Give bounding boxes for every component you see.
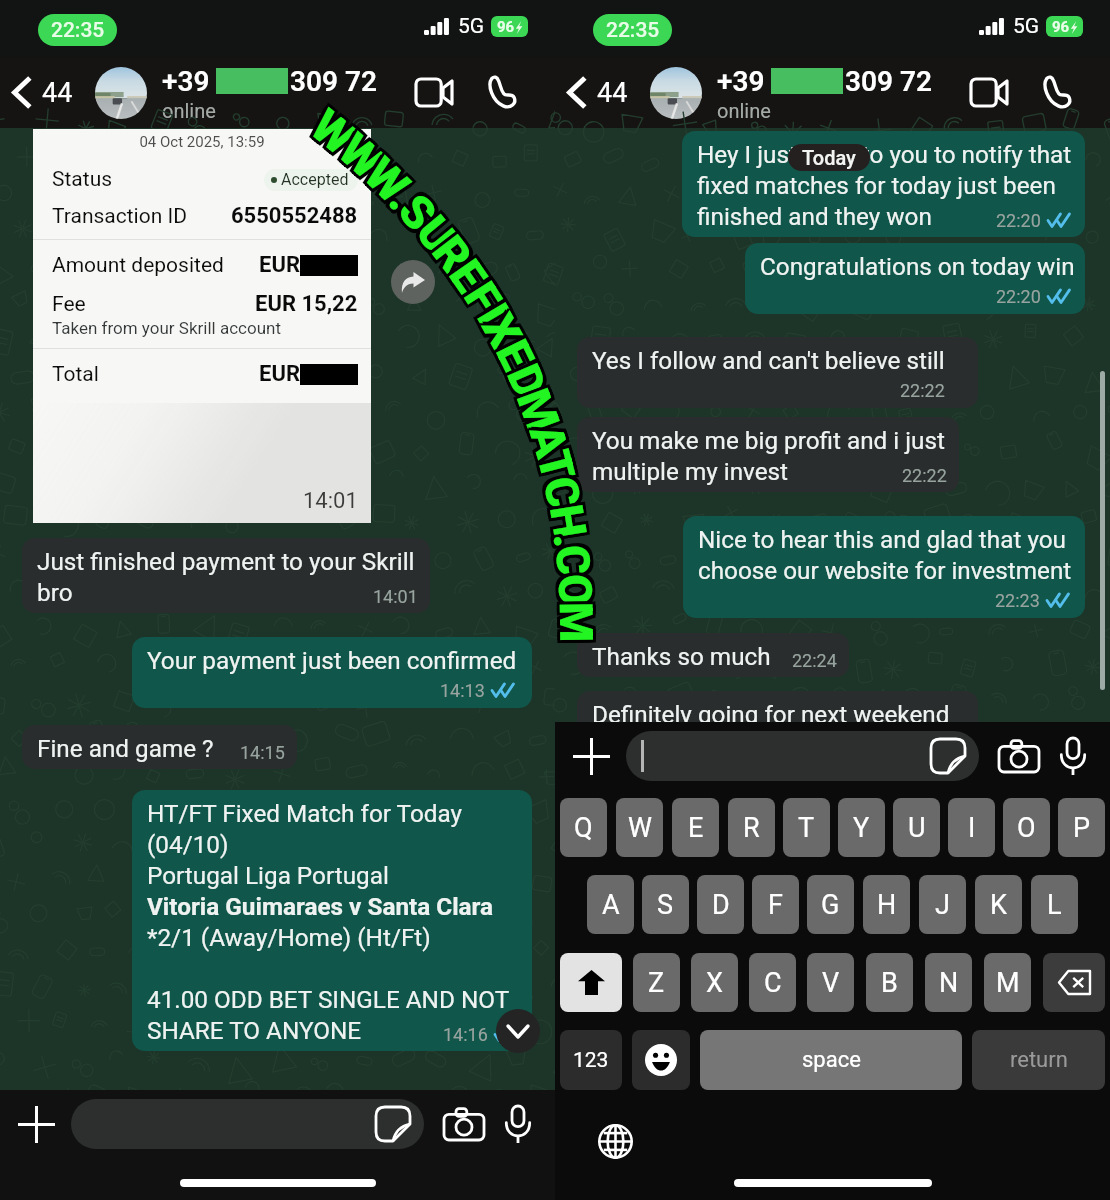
staticText: A — [518, 415, 579, 461]
button[interactable]: Camera — [997, 734, 1041, 778]
staticText: S — [385, 185, 445, 243]
button[interactable]: R — [728, 798, 775, 857]
staticText: F — [455, 275, 514, 326]
button[interactable]: Backspace — [1043, 953, 1105, 1012]
button[interactable]: Emoji — [632, 1030, 690, 1090]
staticText: E — [436, 252, 495, 304]
button[interactable]: Attach — [569, 734, 613, 778]
button[interactable]: Voice call — [475, 67, 555, 118]
staticText: X — [475, 306, 537, 358]
button[interactable]: Nice to hear this and glad that you — [683, 516, 1085, 618]
staticText: P — [1073, 812, 1091, 844]
button[interactable]: D — [697, 875, 744, 934]
button[interactable]: U — [893, 798, 940, 857]
button[interactable]: A — [587, 875, 634, 934]
button[interactable]: Scroll to bottom — [496, 1009, 540, 1053]
staticText: A — [519, 421, 580, 467]
staticText: E — [484, 329, 544, 376]
button[interactable]: V — [807, 953, 854, 1012]
button[interactable]: W — [616, 798, 663, 857]
button[interactable]: Back — [0, 76, 77, 109]
button[interactable]: Shift — [560, 953, 622, 1012]
staticText: M — [507, 378, 572, 435]
button[interactable]: 04 Oct 2025, 13:59 — [33, 129, 371, 523]
button[interactable] — [71, 1099, 424, 1149]
button[interactable]: return — [972, 1030, 1105, 1090]
staticText: return — [1010, 1047, 1068, 1073]
button[interactable]: H — [863, 875, 910, 934]
staticText: H — [535, 498, 594, 540]
button[interactable]: Voice call — [1030, 67, 1110, 118]
button[interactable]: Just finished payment to your Skrill — [22, 538, 430, 613]
staticText: C — [529, 472, 589, 514]
button[interactable]: space — [700, 1030, 962, 1090]
button[interactable]: Camera — [442, 1102, 486, 1146]
button[interactable]: E — [672, 798, 719, 857]
button[interactable]: Change keyboard — [598, 1124, 633, 1159]
staticText: M — [508, 381, 573, 438]
staticText: A — [516, 421, 577, 468]
button[interactable]: C — [749, 953, 796, 1012]
staticText: M — [552, 602, 606, 643]
button[interactable]: You make me big profit and i just — [577, 417, 959, 492]
staticText: X — [472, 301, 534, 353]
button[interactable]: Your payment just been confirmed — [132, 637, 532, 708]
button[interactable]: Definitely going for next weekend — [577, 691, 978, 762]
button[interactable]: Hey I just want to you to notify that — [682, 131, 1085, 237]
button[interactable]: B — [866, 953, 913, 1012]
button[interactable]: 123 — [560, 1030, 622, 1090]
button[interactable]: Fine and game ? — [22, 725, 297, 769]
button[interactable]: O — [1003, 798, 1050, 857]
staticText: S — [657, 889, 674, 921]
button[interactable]: HT/FT Fixed Match for Today — [132, 790, 532, 1051]
button[interactable]: Y — [838, 798, 885, 857]
button[interactable]: Voice message — [497, 1103, 539, 1145]
button[interactable]: Z — [633, 953, 680, 1012]
button[interactable]: G — [807, 875, 854, 934]
staticText: space — [802, 1047, 861, 1073]
button[interactable]: Thanks so much — [577, 633, 849, 677]
button[interactable]: X — [691, 953, 738, 1012]
button[interactable]: F — [752, 875, 799, 934]
button[interactable]: Attach — [14, 1102, 58, 1146]
staticText: D — [712, 889, 730, 921]
button[interactable]: Back — [555, 76, 632, 109]
button[interactable]: Video call — [961, 69, 1030, 116]
button[interactable]: T — [783, 798, 830, 857]
button[interactable]: M — [984, 953, 1031, 1012]
button[interactable]: Congratulations on today win — [745, 243, 1085, 314]
staticText: I — [968, 812, 976, 844]
staticText: . — [539, 530, 595, 551]
staticText: 41.00 ODD BET SINGLE AND NOT — [147, 985, 510, 1013]
staticText: You make me big profit and i just — [592, 426, 945, 454]
button[interactable]: Voice message — [1052, 735, 1094, 777]
button[interactable]: S — [642, 875, 689, 934]
button[interactable]: L — [1031, 875, 1078, 934]
staticText: D — [496, 356, 558, 405]
button[interactable] — [626, 731, 979, 781]
button[interactable]: P — [1058, 798, 1105, 857]
staticText: A — [521, 417, 582, 463]
button[interactable]: Yes I follow and can't believe still — [577, 337, 978, 408]
button[interactable]: Video call — [406, 69, 475, 116]
staticText: Y — [853, 812, 870, 844]
button[interactable]: Forward — [391, 260, 435, 304]
staticText: C — [545, 542, 601, 578]
button[interactable]: N — [925, 953, 972, 1012]
staticText: . — [381, 171, 429, 219]
staticText: D — [495, 360, 556, 409]
button[interactable]: I — [948, 798, 995, 857]
staticText: . — [546, 532, 601, 553]
staticText: Taken from your Skrill account — [52, 318, 281, 338]
staticText: . — [378, 177, 427, 225]
staticText: H — [539, 501, 597, 542]
button[interactable]: J — [919, 875, 966, 934]
staticText: W — [332, 122, 398, 189]
button[interactable]: K — [975, 875, 1022, 934]
staticText: T — [798, 812, 815, 844]
staticText: U — [405, 209, 467, 268]
staticText: D — [492, 355, 554, 404]
button[interactable]: Q — [560, 798, 607, 857]
staticText: X — [470, 302, 531, 354]
staticText: Total — [52, 362, 99, 387]
